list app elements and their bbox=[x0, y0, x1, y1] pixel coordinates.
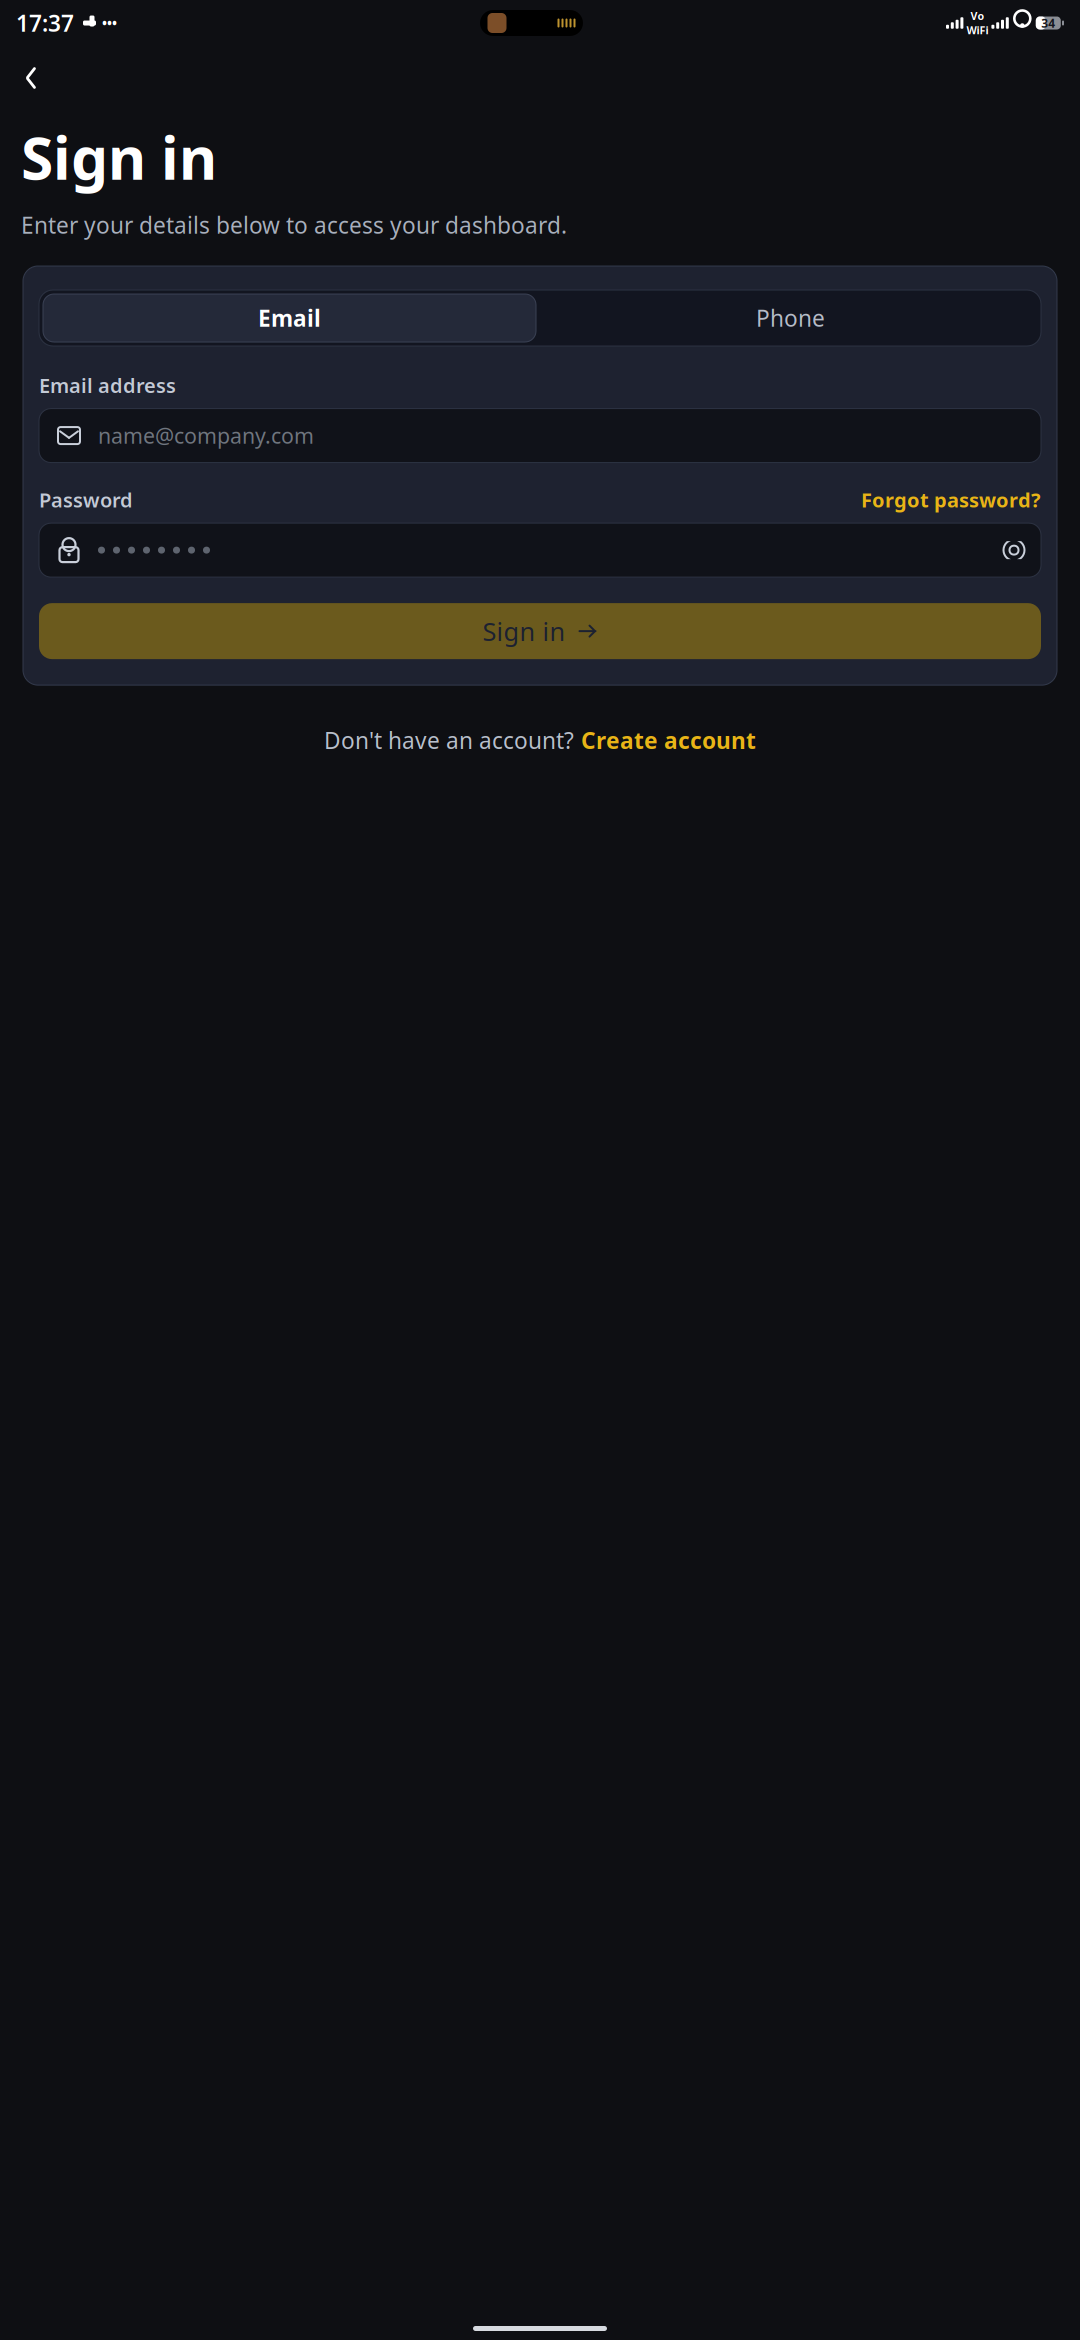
staticText: 17:37 bbox=[16, 8, 74, 38]
staticText: Email bbox=[258, 303, 321, 333]
button[interactable]: Sign in bbox=[39, 603, 1041, 659]
staticText: Enter your details below to access your … bbox=[21, 210, 567, 240]
staticText: Don't have an account? bbox=[324, 725, 574, 755]
staticText: Forgot password? bbox=[861, 487, 1041, 513]
staticText: Create account bbox=[581, 725, 756, 755]
button[interactable]: Show password bbox=[994, 530, 1034, 570]
button[interactable]: Phone bbox=[540, 290, 1041, 346]
staticText: name@company.com bbox=[98, 421, 314, 450]
button[interactable]: Forgot password? bbox=[861, 487, 1041, 513]
button[interactable]: Back bbox=[9, 56, 53, 100]
staticText: Vo bbox=[970, 9, 984, 23]
staticText: Sign in bbox=[482, 614, 565, 648]
staticText: WiFi bbox=[966, 23, 988, 37]
button[interactable]: Don't have an account? bbox=[308, 715, 772, 765]
staticText: Sign in bbox=[21, 118, 217, 196]
staticText: ••• bbox=[102, 14, 117, 32]
staticText: Password bbox=[39, 487, 133, 513]
staticText: Phone bbox=[756, 303, 825, 333]
button[interactable]: Email bbox=[39, 290, 540, 346]
staticText: 34 bbox=[1041, 15, 1055, 31]
staticText: Email address bbox=[39, 372, 176, 399]
